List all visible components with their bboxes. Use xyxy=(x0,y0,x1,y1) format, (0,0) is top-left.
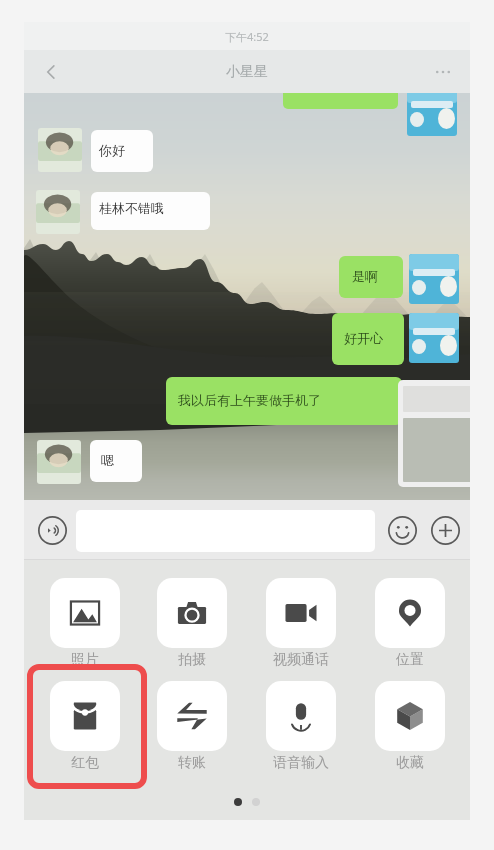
staticText: 收藏 xyxy=(396,754,424,772)
button[interactable]: Emoji xyxy=(386,514,418,546)
staticText: 视频通话 xyxy=(273,651,329,669)
staticText: 下午4:52 xyxy=(225,29,269,44)
staticText: 好开心 xyxy=(344,330,383,346)
staticText: 是啊 xyxy=(352,268,378,284)
staticText: 拍摄 xyxy=(178,651,206,669)
button[interactable]: 语音输入 xyxy=(266,681,336,772)
staticText: 红包 xyxy=(71,754,99,772)
staticText: 语音输入 xyxy=(273,754,329,772)
staticText: 我以后有上午要做手机了 xyxy=(178,392,321,408)
button[interactable]: 转账 xyxy=(157,681,227,772)
button[interactable]: 红包 xyxy=(50,681,120,772)
staticText: 位置 xyxy=(396,651,424,669)
staticText: 嗯 xyxy=(101,452,114,468)
button[interactable]: 位置 xyxy=(375,578,445,669)
button[interactable]: More xyxy=(429,514,461,546)
staticText: 桂林不错哦 xyxy=(99,200,164,216)
button[interactable]: 视频通话 xyxy=(266,578,336,669)
staticText: 照片 xyxy=(71,651,99,669)
button[interactable]: 收藏 xyxy=(375,681,445,772)
button[interactable]: Voice message xyxy=(36,514,68,546)
button[interactable]: 照片 xyxy=(50,578,120,669)
button[interactable]: More options xyxy=(426,55,460,89)
button[interactable]: 拍摄 xyxy=(157,578,227,669)
staticText: 小星星 xyxy=(226,63,268,81)
button[interactable]: Back xyxy=(32,53,70,91)
staticText: 你好 xyxy=(99,142,125,158)
staticText: 转账 xyxy=(178,754,206,772)
